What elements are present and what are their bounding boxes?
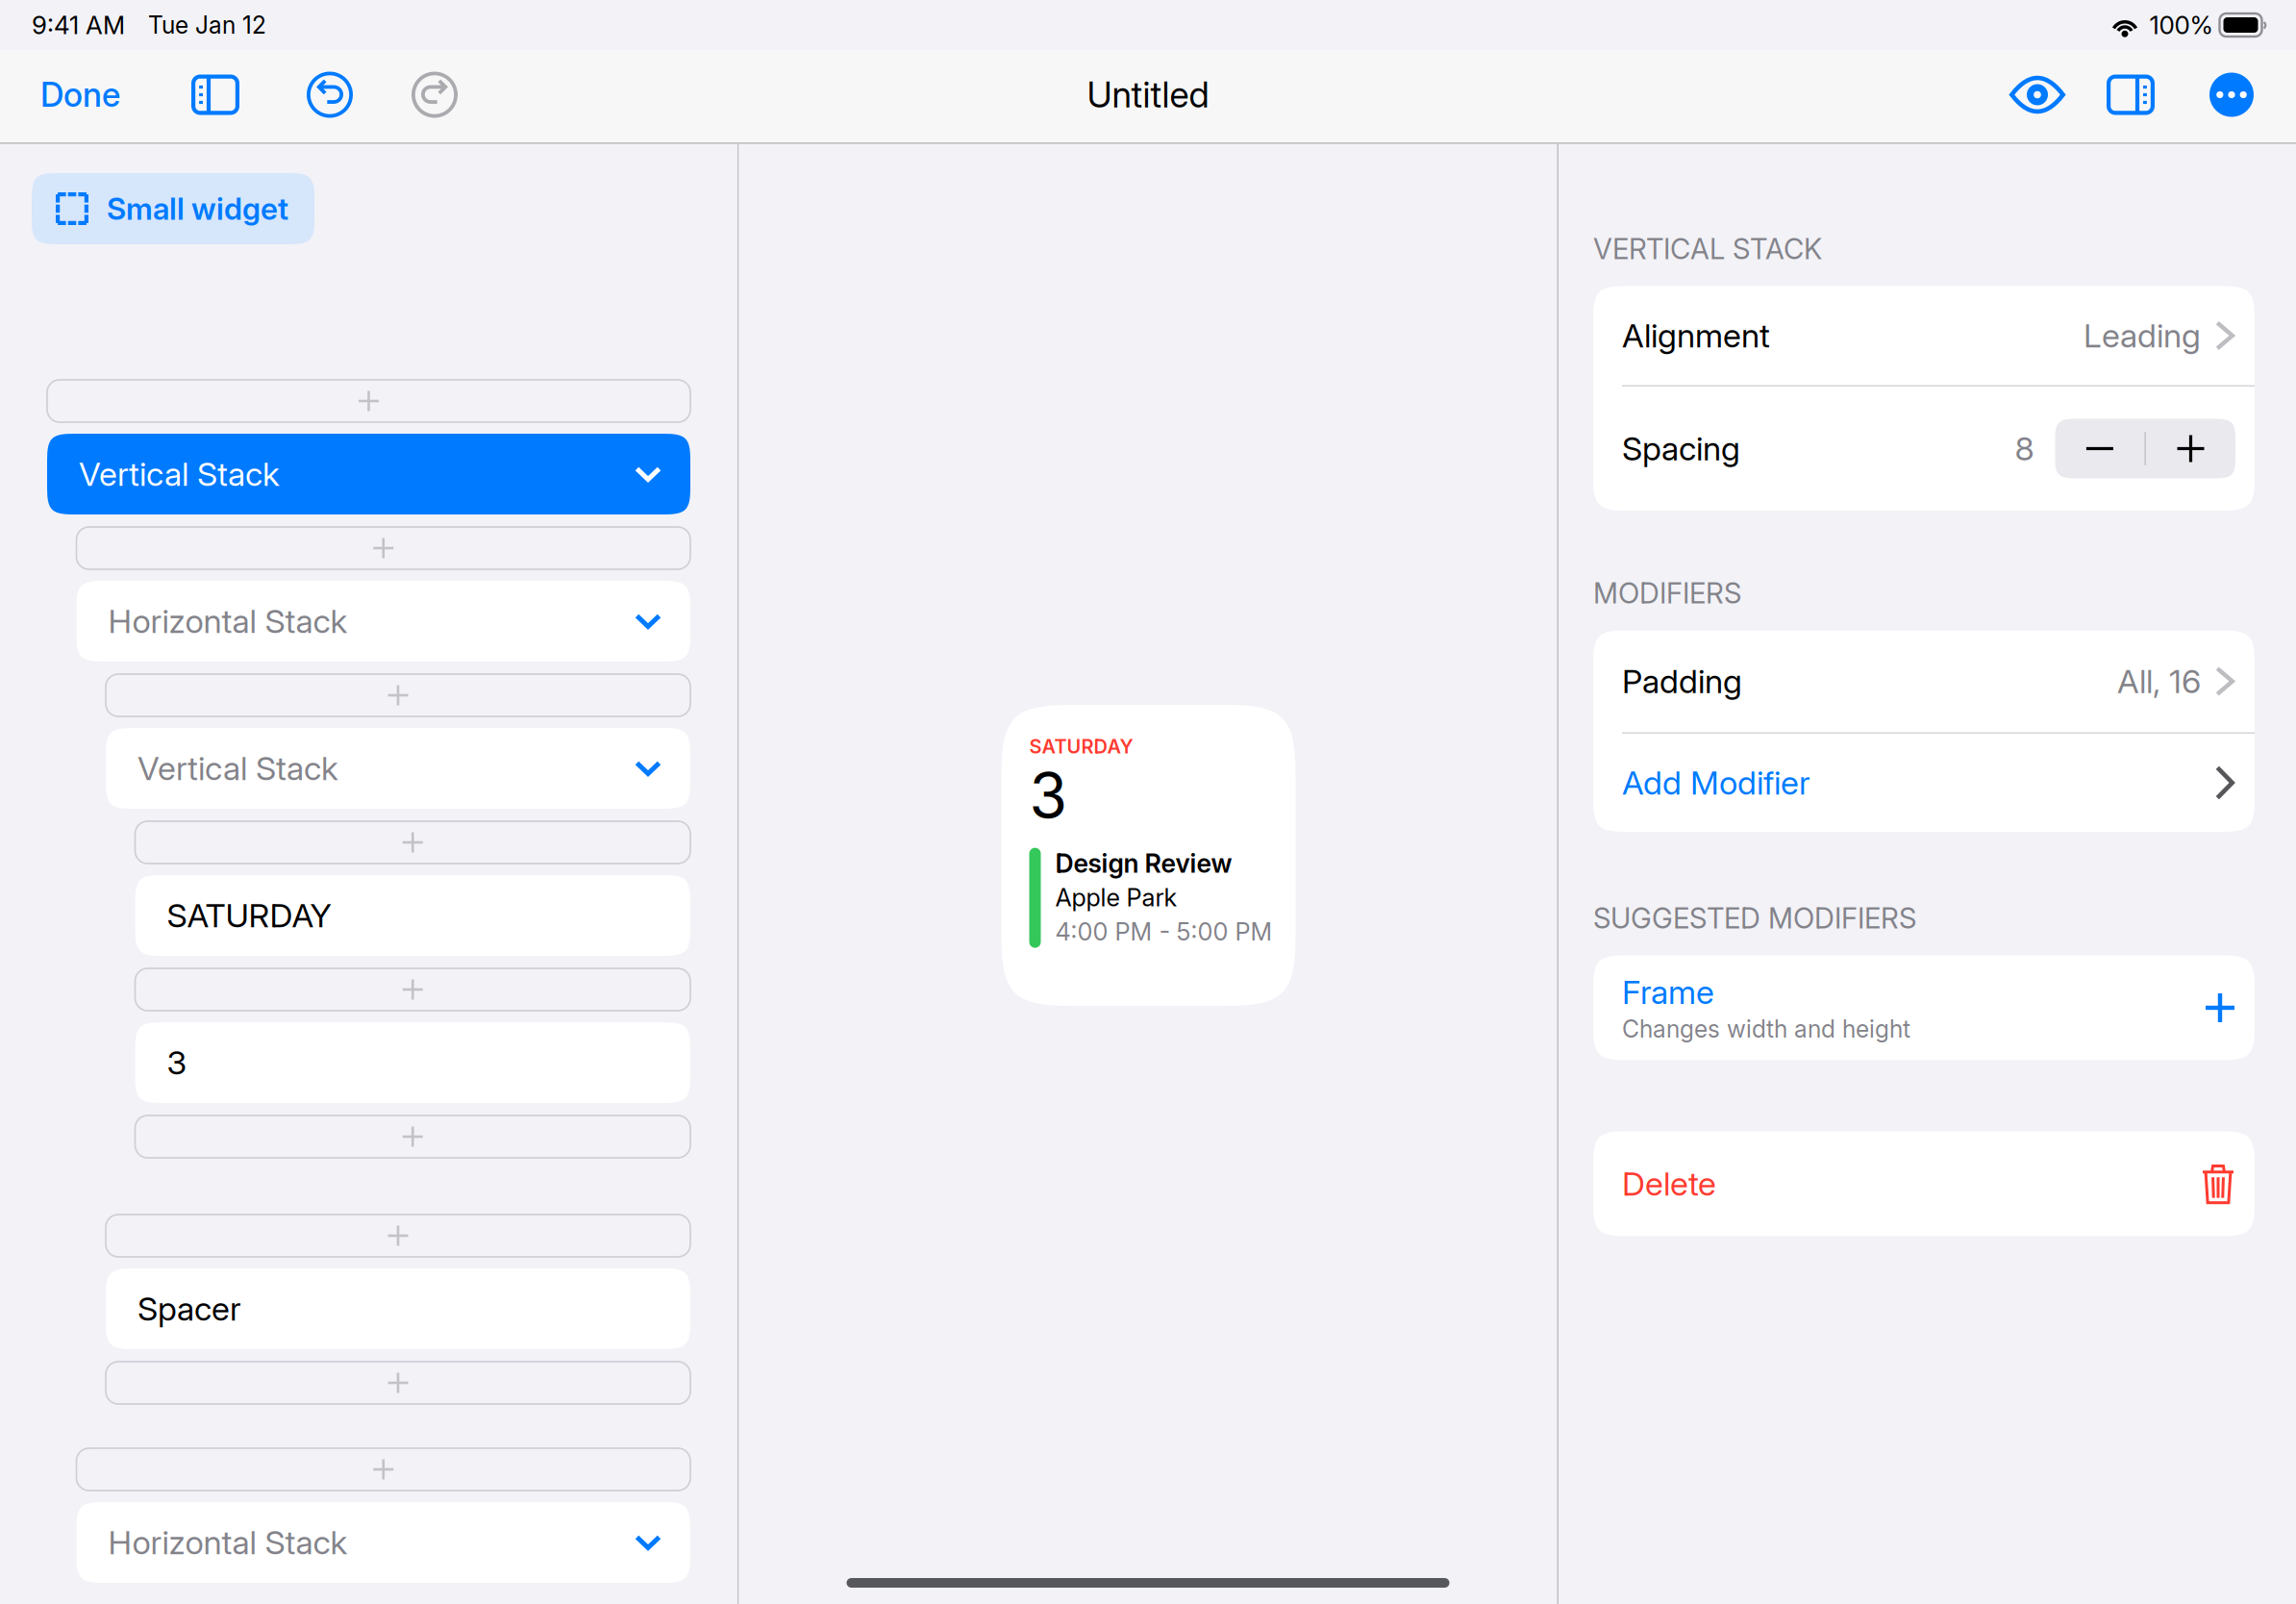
staticText: All, 16 — [2117, 662, 2201, 701]
button[interactable]: Insert view — [135, 968, 690, 1011]
button[interactable]: More — [2209, 73, 2254, 117]
button[interactable]: Insert view — [135, 821, 690, 864]
staticText: SUGGESTED MODIFIERS — [1593, 901, 1916, 935]
staticText: Alignment — [1622, 316, 1770, 355]
staticText: Design Review — [1055, 848, 1232, 879]
button[interactable]: Small widget — [32, 173, 314, 244]
staticText: Vertical Stack — [79, 454, 280, 494]
button[interactable]: Decrease — [2055, 419, 2144, 478]
staticText: Horizontal Stack — [108, 601, 348, 641]
staticText: Frame — [1622, 972, 1714, 1012]
staticText: Tue Jan 12 — [148, 11, 266, 39]
button[interactable]: Add Modifier — [1593, 734, 2255, 832]
staticText: Padding — [1622, 662, 1742, 701]
button[interactable]: Show inspector — [2107, 75, 2155, 115]
button[interactable]: Horizontal Stack — [76, 581, 690, 662]
staticText: 3 — [167, 1043, 187, 1082]
button[interactable]: Horizontal Stack — [76, 1502, 690, 1583]
button[interactable]: SATURDAY — [135, 875, 690, 956]
staticText: Horizontal Stack — [108, 1523, 348, 1562]
staticText: Spacer — [137, 1289, 241, 1328]
button[interactable]: Frame — [1593, 955, 2255, 1060]
staticText: Spacing — [1622, 429, 1740, 468]
staticText: Changes width and height — [1622, 1015, 1910, 1043]
button[interactable]: Show navigator — [191, 75, 239, 115]
button[interactable]: Insert view — [76, 527, 690, 569]
button[interactable]: Vertical Stack — [47, 434, 690, 514]
button[interactable]: Insert view — [106, 1362, 690, 1404]
staticText: Vertical Stack — [137, 749, 338, 788]
staticText: Add Modifier — [1622, 763, 1810, 802]
button[interactable]: Preview — [2009, 76, 2065, 113]
button[interactable]: Redo — [412, 72, 458, 118]
button[interactable]: Insert view — [106, 674, 690, 716]
button[interactable]: Delete — [1593, 1131, 2255, 1236]
button[interactable]: Padding — [1593, 630, 2255, 732]
button[interactable]: Insert view — [47, 380, 690, 422]
staticText: 100% — [2149, 10, 2213, 40]
button[interactable]: Undo — [307, 72, 353, 118]
staticText: Done — [40, 75, 120, 115]
staticText: 9:41 AM — [32, 10, 125, 40]
button[interactable]: Insert view — [106, 1215, 690, 1257]
staticText: Delete — [1622, 1164, 1716, 1203]
staticText: VERTICAL STACK — [1593, 232, 1822, 266]
button[interactable]: Insert view — [135, 1115, 690, 1158]
button[interactable]: Increase — [2146, 419, 2235, 478]
staticText: MODIFIERS — [1593, 576, 1741, 610]
button[interactable]: Vertical Stack — [106, 728, 690, 809]
button[interactable]: Done — [35, 61, 126, 128]
staticText: 4:00 PM - 5:00 PM — [1055, 917, 1273, 947]
staticText: Apple Park — [1055, 883, 1177, 912]
button[interactable]: Spacer — [106, 1268, 690, 1349]
button[interactable]: Alignment — [1593, 286, 2255, 385]
staticText: 8 — [2015, 429, 2034, 468]
staticText: SATURDAY — [167, 896, 331, 935]
button[interactable]: 3 — [135, 1022, 690, 1103]
button[interactable]: Insert view — [76, 1448, 690, 1491]
staticText: Small widget — [107, 190, 288, 227]
staticText: SATURDAY — [1029, 735, 1133, 758]
staticText: 3 — [1029, 758, 1068, 832]
staticText: Untitled — [1087, 73, 1209, 116]
staticText: Leading — [2084, 316, 2201, 355]
